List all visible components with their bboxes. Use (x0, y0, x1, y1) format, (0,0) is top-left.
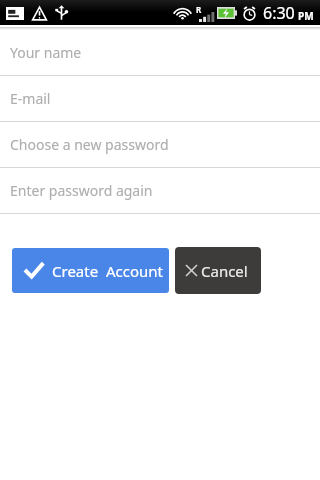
staticText: R (196, 4, 202, 15)
staticText: 6:30 (263, 2, 295, 24)
button[interactable]: Choose a new password (0, 122, 320, 167)
staticText: Enter password again (10, 181, 153, 200)
staticText: Choose a new password (10, 135, 169, 154)
staticText: PM (298, 9, 314, 23)
staticText: E-mail (10, 89, 51, 108)
button[interactable]: Create Account (12, 248, 169, 293)
button[interactable]: Your name (0, 30, 320, 75)
button[interactable]: Cancel (175, 247, 261, 294)
button[interactable]: Enter password again (0, 168, 320, 213)
staticText: Your name (10, 43, 82, 62)
staticText: Cancel (201, 261, 248, 281)
staticText: Create Account (52, 261, 163, 281)
button[interactable]: E-mail (0, 76, 320, 121)
